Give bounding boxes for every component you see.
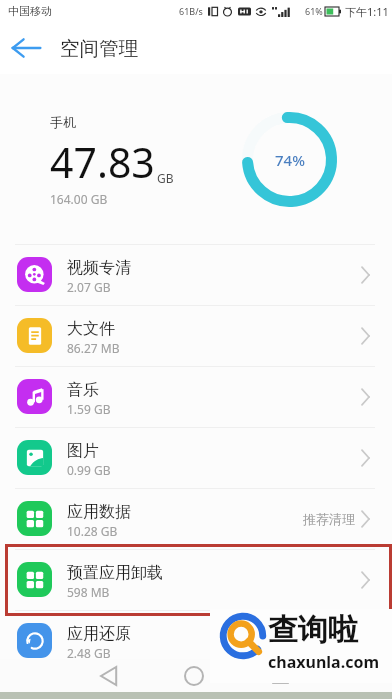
staticText: 视频专清	[67, 258, 131, 278]
button[interactable]: 大文件	[0, 305, 392, 366]
staticText: 74%	[275, 150, 305, 170]
button[interactable]: 视频专清	[0, 244, 392, 305]
button[interactable]: 预置应用卸载	[0, 549, 392, 610]
button[interactable]: 应用数据	[0, 488, 392, 549]
staticText: 164.00 GB	[50, 191, 108, 207]
staticText: 0.99 GB	[67, 462, 111, 478]
staticText: 61B/s	[179, 5, 203, 17]
staticText: 10.28 GB	[67, 523, 118, 539]
staticText: 86.27 MB	[67, 340, 120, 356]
staticText: GB	[157, 170, 174, 186]
staticText: 61%	[305, 5, 323, 17]
staticText: 手机	[50, 114, 76, 130]
staticText: 空间管理	[60, 36, 138, 61]
staticText: 应用还原	[67, 624, 131, 644]
button[interactable]: 音乐	[0, 366, 392, 427]
button[interactable]: Recents	[257, 659, 303, 692]
staticText: 47.83	[50, 134, 155, 190]
staticText: 2.07 GB	[67, 279, 111, 295]
staticText: 598 MB	[67, 584, 110, 600]
staticText: 应用数据	[67, 502, 131, 522]
staticText: 中国移动	[8, 4, 52, 18]
button[interactable]: Back	[0, 22, 52, 74]
button[interactable]: 应用还原	[0, 610, 392, 671]
staticText: 2.48 GB	[67, 645, 111, 661]
button[interactable]: 图片	[0, 427, 392, 488]
staticText: 音乐	[67, 380, 99, 400]
staticText: 查询啦	[268, 611, 358, 649]
button[interactable]: Home	[171, 659, 217, 692]
staticText: 预置应用卸载	[67, 563, 163, 583]
staticText: 图片	[67, 441, 99, 461]
button[interactable]: Back	[86, 659, 132, 692]
staticText: chaxunla.com	[268, 651, 379, 673]
staticText: 1.59 GB	[67, 401, 111, 417]
staticText: 大文件	[67, 319, 115, 339]
staticText: 下午1:11	[345, 4, 389, 19]
staticText: 推荐清理	[303, 511, 355, 527]
